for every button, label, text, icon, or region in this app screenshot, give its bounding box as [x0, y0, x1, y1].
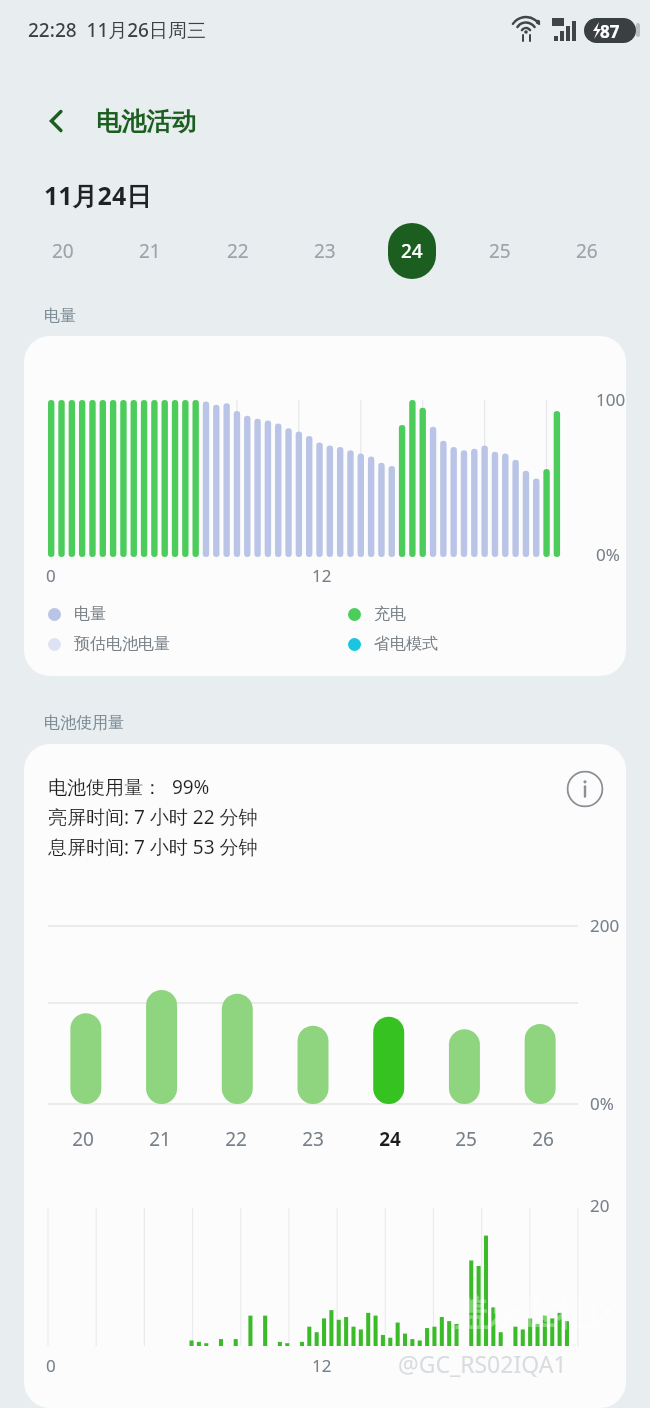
button[interactable]: 20 [34, 222, 92, 280]
staticText: 22:28 11月26日周三 [28, 17, 206, 43]
button[interactable]: 23 [296, 222, 354, 280]
staticText: 电量 [44, 306, 76, 326]
staticText: 26 [576, 238, 598, 264]
staticText: 省电模式 [374, 634, 438, 654]
staticText: 电池使用量： 99% [48, 774, 210, 800]
button[interactable]: 21 [121, 222, 179, 280]
staticText: 21 [139, 238, 161, 264]
staticText: @GC_RS02IQA1 [398, 1348, 567, 1379]
button[interactable]: 25 [471, 222, 529, 280]
staticText: 0 [46, 564, 56, 587]
staticText: 亮屏时间: 7 小时 22 分钟 [48, 804, 258, 830]
button[interactable]: 22 [209, 222, 267, 280]
staticText: 24 [401, 238, 423, 264]
staticText: 26 [532, 1126, 554, 1152]
staticText: 20 [52, 238, 74, 264]
button[interactable]: 电池使用量： 99% [24, 744, 626, 1408]
staticText: 25 [455, 1126, 477, 1152]
staticText: 电池活动 [96, 106, 196, 137]
staticText: 电池使用量 [44, 713, 124, 733]
button[interactable]: Info [562, 766, 608, 812]
staticText: 盖乐世社区 [454, 1292, 624, 1335]
staticText: 12 [312, 564, 332, 587]
staticText: 电量 [74, 604, 106, 624]
button[interactable]: 26 [558, 222, 616, 280]
staticText: 22 [225, 1126, 247, 1152]
staticText: 息屏时间: 7 小时 53 分钟 [48, 834, 258, 860]
staticText: 100 [596, 388, 626, 411]
staticText: 24 [379, 1126, 401, 1152]
button[interactable]: 24 [383, 222, 441, 280]
staticText: 20 [72, 1126, 94, 1152]
staticText: 充电 [374, 604, 406, 624]
staticText: 0 [46, 1354, 56, 1377]
staticText: 200 [590, 914, 620, 937]
staticText: 预估电池电量 [74, 634, 170, 654]
staticText: 25 [489, 238, 511, 264]
staticText: 0% [590, 1092, 614, 1115]
staticText: 23 [302, 1126, 324, 1152]
staticText: 20 [590, 1194, 610, 1217]
staticText: 0% [596, 543, 620, 566]
staticText: 22 [227, 238, 249, 264]
staticText: 23 [314, 238, 336, 264]
staticText: 21 [149, 1126, 171, 1152]
staticText: 12 [312, 1354, 332, 1377]
button[interactable]: Back [34, 98, 80, 144]
button[interactable]: 100 [24, 336, 626, 676]
staticText: 87 [600, 20, 620, 43]
staticText: 11月24日 [44, 178, 152, 212]
